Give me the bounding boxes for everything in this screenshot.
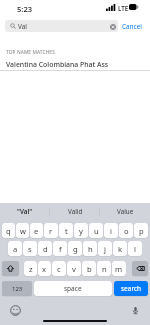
button[interactable]: k: [113, 241, 127, 256]
staticText: u: [94, 226, 99, 236]
button[interactable]: space: [34, 281, 112, 296]
button[interactable]: h: [83, 241, 97, 256]
button[interactable]: Cancel: [122, 20, 142, 32]
staticText: n: [102, 264, 107, 274]
button[interactable]: f: [53, 241, 67, 256]
staticText: Valid: [68, 207, 83, 216]
staticText: Val: [18, 22, 27, 31]
button[interactable]: Dictation: [129, 304, 141, 316]
button[interactable]: t: [59, 223, 73, 238]
button[interactable]: g: [68, 241, 82, 256]
staticText: j: [104, 244, 106, 254]
staticText: "Val": [17, 207, 33, 216]
staticText: o: [124, 226, 129, 236]
staticText: i: [110, 226, 112, 236]
button[interactable]: Clear text: [109, 23, 116, 30]
button[interactable]: e: [30, 223, 43, 238]
button[interactable]: d: [38, 241, 52, 256]
button[interactable]: Valid: [50, 204, 100, 218]
staticText: s: [28, 244, 32, 254]
button[interactable]: j: [98, 241, 112, 256]
button[interactable]: p: [134, 223, 148, 238]
button[interactable]: search: [114, 281, 148, 296]
button[interactable]: c: [52, 261, 66, 276]
button[interactable]: m: [112, 261, 126, 276]
button[interactable]: b: [82, 261, 96, 276]
staticText: f: [59, 244, 62, 254]
staticText: space: [64, 284, 82, 293]
button[interactable]: u: [89, 223, 103, 238]
button[interactable]: Emoji keyboard: [9, 304, 21, 316]
staticText: TOP NAME MATCHES: [6, 49, 55, 56]
staticText: Value: [117, 207, 134, 216]
staticText: LTE: [118, 4, 129, 12]
button[interactable]: z: [24, 261, 37, 276]
staticText: y: [79, 226, 83, 236]
staticText: 123: [12, 285, 23, 293]
staticText: a: [13, 244, 18, 254]
staticText: g: [73, 244, 78, 254]
button[interactable]: Val: [5, 20, 118, 32]
button[interactable]: r: [44, 223, 58, 238]
button[interactable]: y: [74, 223, 88, 238]
staticText: t: [65, 226, 68, 236]
button[interactable]: v: [67, 261, 81, 276]
staticText: Valentina Colombiana Phat Ass: [6, 60, 109, 69]
button[interactable]: x: [38, 261, 51, 276]
button[interactable]: n: [97, 261, 111, 276]
staticText: z: [29, 264, 33, 274]
staticText: k: [118, 244, 123, 254]
staticText: w: [20, 226, 26, 236]
staticText: Cancel: [122, 22, 142, 31]
button[interactable]: w: [16, 223, 29, 238]
button[interactable]: o: [119, 223, 133, 238]
button[interactable]: s: [23, 241, 37, 256]
staticText: c: [57, 264, 61, 274]
button[interactable]: 123: [2, 281, 32, 296]
staticText: l: [134, 244, 136, 254]
staticText: p: [139, 226, 144, 236]
button[interactable]: backspace: [132, 261, 148, 276]
button[interactable]: "Val": [0, 204, 50, 218]
staticText: search: [121, 284, 142, 293]
button[interactable]: shift: [2, 261, 19, 276]
staticText: q: [6, 226, 11, 236]
button[interactable]: Value: [100, 204, 150, 218]
button[interactable]: i: [104, 223, 118, 238]
staticText: e: [34, 226, 39, 236]
button[interactable]: q: [2, 223, 15, 238]
staticText: x: [42, 264, 47, 274]
staticText: 5:23: [17, 4, 33, 14]
button[interactable]: a: [8, 241, 22, 256]
button[interactable]: l: [128, 241, 142, 256]
staticText: b: [87, 264, 92, 274]
staticText: m: [115, 264, 123, 274]
button[interactable]: Valentina Colombiana Phat Ass: [0, 57, 150, 70]
staticText: v: [72, 264, 76, 274]
staticText: r: [49, 226, 53, 236]
staticText: d: [43, 244, 48, 254]
staticText: h: [88, 244, 93, 254]
